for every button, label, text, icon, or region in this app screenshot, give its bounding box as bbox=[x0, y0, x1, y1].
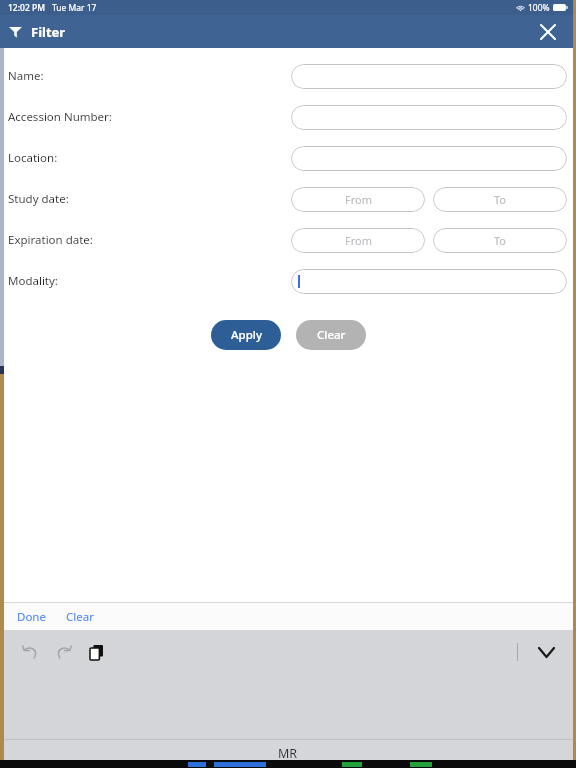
button[interactable]: Done bbox=[14, 605, 49, 629]
staticText: Modality: bbox=[8, 273, 58, 289]
button[interactable]: Redo bbox=[49, 638, 77, 666]
button[interactable]: Paste bbox=[82, 638, 110, 666]
staticText: From bbox=[345, 192, 372, 207]
staticText: 100% bbox=[528, 2, 550, 14]
button[interactable] bbox=[291, 105, 567, 130]
button[interactable] bbox=[291, 64, 567, 89]
staticText: MR bbox=[278, 745, 298, 762]
staticText: To bbox=[494, 192, 507, 207]
button[interactable]: MR bbox=[0, 740, 576, 767]
staticText: Location: bbox=[8, 150, 58, 166]
button[interactable]: Clear bbox=[296, 320, 366, 350]
button[interactable]: Undo bbox=[16, 638, 44, 666]
button[interactable]: From bbox=[291, 228, 425, 253]
staticText: Name: bbox=[8, 68, 44, 84]
button[interactable]: Hide keyboard bbox=[532, 638, 560, 666]
staticText: From bbox=[345, 233, 372, 248]
button[interactable] bbox=[291, 146, 567, 171]
staticText: Clear bbox=[317, 327, 346, 343]
staticText: Done bbox=[17, 609, 46, 625]
staticText: Study date: bbox=[8, 191, 69, 207]
button[interactable]: From bbox=[291, 187, 425, 212]
staticText: 12:02 PM bbox=[8, 2, 45, 14]
staticText: Expiration date: bbox=[8, 232, 93, 248]
staticText: To bbox=[494, 233, 507, 248]
staticText: Accession Number: bbox=[8, 109, 112, 125]
button[interactable]: To bbox=[433, 228, 567, 253]
staticText: Clear bbox=[66, 609, 94, 625]
button[interactable]: Apply bbox=[211, 320, 281, 350]
staticText: Filter bbox=[31, 23, 66, 41]
staticText: Tue Mar 17 bbox=[52, 2, 97, 14]
button[interactable]: Close bbox=[534, 18, 562, 46]
button[interactable]: To bbox=[433, 187, 567, 212]
staticText: Apply bbox=[231, 327, 262, 343]
button[interactable] bbox=[291, 269, 567, 294]
button[interactable]: Clear bbox=[63, 605, 97, 629]
